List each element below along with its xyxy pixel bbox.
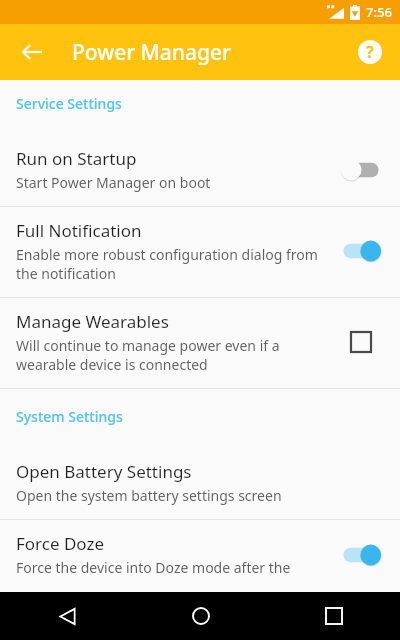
button[interactable]: Toggle on: [339, 238, 383, 264]
staticText: Full Notification: [16, 219, 142, 242]
button[interactable]: Back: [8, 28, 56, 76]
button[interactable]: Help: [348, 30, 392, 74]
button[interactable]: Recent apps: [267, 592, 400, 640]
staticText: Manage Wearables: [16, 310, 169, 333]
button[interactable]: Full Notification: [0, 207, 400, 297]
button[interactable]: Toggle off: [339, 157, 383, 183]
staticText: Start Power Manager on boot: [16, 173, 211, 192]
staticText: Force Doze: [16, 532, 105, 555]
staticText: Open Battery Settings: [16, 460, 192, 483]
button[interactable]: Run on Startup: [0, 135, 400, 206]
staticText: 7:56: [366, 3, 392, 21]
staticText: System Settings: [16, 407, 123, 426]
staticText: Run on Startup: [16, 147, 137, 170]
button[interactable]: Home: [134, 592, 267, 640]
staticText: Force the device into Doze mode after th…: [16, 558, 326, 578]
button[interactable]: Back: [0, 592, 134, 640]
staticText: ?: [366, 41, 374, 63]
staticText: Will continue to manage power even if a …: [16, 336, 326, 374]
staticText: Open the system battery settings screen: [16, 486, 282, 505]
button[interactable]: Force Doze: [0, 520, 400, 592]
staticText: Enable more robust configuration dialog …: [16, 245, 326, 283]
staticText: Power Manager: [72, 38, 231, 67]
button[interactable]: Manage Wearables checkbox: [343, 324, 379, 360]
button[interactable]: Open Battery Settings: [0, 448, 400, 519]
staticText: Service Settings: [16, 94, 122, 113]
button[interactable]: Manage Wearables: [0, 298, 400, 388]
button[interactable]: Toggle on: [339, 542, 383, 568]
